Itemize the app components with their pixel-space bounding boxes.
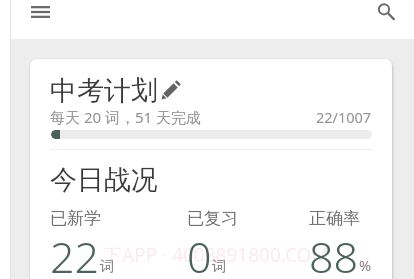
button[interactable]: Edit plan: [158, 76, 186, 106]
button[interactable]: Search: [372, 0, 402, 30]
staticText: 中考计划: [50, 74, 158, 108]
staticText: 词: [100, 257, 115, 275]
staticText: 正确率: [309, 208, 360, 229]
staticText: 每天 20 词，51 天完成: [50, 107, 202, 127]
staticText: %: [359, 255, 372, 275]
staticText: 0: [187, 227, 212, 279]
button[interactable]: Menu: [22, 0, 59, 30]
staticText: 88: [309, 227, 359, 279]
staticText: 已复习: [187, 208, 238, 229]
staticText: 22: [50, 227, 100, 279]
staticText: 今日战况: [50, 163, 158, 197]
staticText: 下APP · 4008891800.COM: [103, 242, 329, 268]
staticText: 词: [212, 257, 227, 275]
staticText: 已新学: [50, 208, 101, 229]
staticText: 22/1007: [316, 107, 372, 127]
